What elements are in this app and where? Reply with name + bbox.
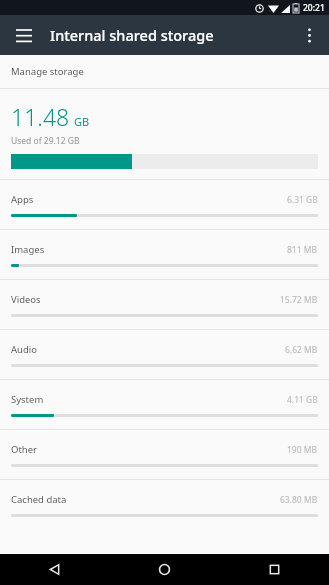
button[interactable]: Open navigation menu (8, 19, 40, 51)
staticText: Cached data (11, 493, 67, 506)
staticText: System (11, 393, 44, 406)
staticText: 11.48 (11, 101, 70, 132)
staticText: Used of 29.12 GB (11, 135, 80, 147)
staticText: 6.31 GB (287, 194, 318, 206)
button[interactable]: Manage storage (0, 55, 329, 88)
button[interactable]: Other (0, 430, 329, 479)
staticText: 4.11 GB (287, 394, 318, 406)
staticText: 20:21 (303, 2, 325, 14)
button[interactable]: 11.48 (0, 89, 329, 179)
button[interactable]: Recent apps (219, 554, 329, 585)
staticText: Internal shared storage (50, 25, 214, 45)
button[interactable]: Apps (0, 180, 329, 229)
staticText: Manage storage (11, 65, 84, 78)
staticText: Videos (11, 293, 41, 306)
button[interactable]: Home (109, 554, 219, 585)
staticText: 15.72 MB (280, 294, 318, 306)
button[interactable]: Videos (0, 280, 329, 329)
staticText: Apps (11, 193, 34, 206)
button[interactable]: Back (0, 554, 109, 585)
staticText: Audio (11, 343, 37, 356)
staticText: 6.62 MB (285, 344, 318, 356)
staticText: Images (11, 243, 45, 256)
staticText: 811 MB (287, 244, 318, 256)
button[interactable]: More options (293, 19, 325, 51)
staticText: 190 MB (287, 444, 318, 456)
button[interactable]: Images (0, 230, 329, 279)
button[interactable]: Audio (0, 330, 329, 379)
staticText: GB (74, 114, 90, 129)
button[interactable]: System (0, 380, 329, 429)
staticText: 63.80 MB (280, 494, 318, 506)
button[interactable]: Cached data (0, 480, 329, 529)
staticText: Other (11, 443, 38, 456)
